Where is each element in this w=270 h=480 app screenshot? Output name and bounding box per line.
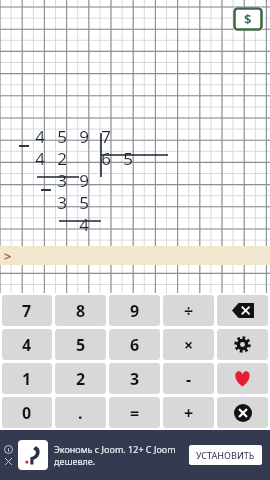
staticText: 7 [101,125,111,147]
button[interactable]: 4 [2,329,52,360]
staticText: 9 [79,169,89,191]
staticText: 4 [35,125,45,147]
button[interactable]: . [55,397,106,428]
button[interactable]: Settings [217,329,268,360]
button[interactable]: > [0,246,270,265]
button[interactable]: Money [233,7,263,31]
staticText: 5 [76,334,86,356]
staticText: 8 [76,300,86,322]
staticText: 7 [22,300,32,322]
staticText: $ [244,10,252,28]
button[interactable]: 3 [109,363,160,394]
staticText: 0 [22,402,32,424]
staticText: 3 [130,368,140,390]
staticText: × [184,334,194,356]
button[interactable]: 9 [109,295,160,326]
staticText: 4 [79,213,89,235]
button[interactable]: 7 [2,295,52,326]
staticText: 2 [76,368,86,390]
staticText: . [78,402,83,424]
button[interactable]: ÷ [163,295,214,326]
staticText: 5 [79,191,89,213]
button[interactable]: + [163,397,214,428]
button[interactable]: УСТАНОВИТЬ [189,445,262,465]
staticText: 4 [35,147,45,169]
staticText: 1 [22,368,32,390]
staticText: 5 [123,147,133,169]
staticText: 6 [101,147,111,169]
button[interactable]: Favorite [217,363,268,394]
staticText: 3 [57,191,67,213]
button[interactable]: - [163,363,214,394]
button[interactable]: Экономь с Joom. 12+ С Joom [0,430,270,480]
button[interactable]: Clear [217,397,268,428]
button[interactable]: 1 [2,363,52,394]
button[interactable]: × [163,329,214,360]
button[interactable]: 5 [55,329,106,360]
staticText: - [186,368,192,390]
staticText: 4 [22,334,32,356]
staticText: 9 [130,300,140,322]
staticText: 6 [130,334,140,356]
staticText: 3 [57,169,67,191]
button[interactable]: 0 [2,397,52,428]
button[interactable]: = [109,397,160,428]
button[interactable]: 2 [55,363,106,394]
staticText: УСТАНОВИТЬ [196,449,255,461]
button[interactable]: Backspace [217,295,268,326]
staticText: = [130,402,140,424]
staticText: дешевле. [54,455,96,467]
staticText: 5 [57,125,67,147]
staticText: > [4,247,12,265]
button[interactable]: 6 [109,329,160,360]
button[interactable]: 8 [55,295,106,326]
staticText: Экономь с Joom. 12+ С Joom [54,443,176,455]
staticText: 2 [57,147,67,169]
staticText: 9 [79,125,89,147]
staticText: + [184,402,194,424]
staticText: ÷ [184,300,194,322]
